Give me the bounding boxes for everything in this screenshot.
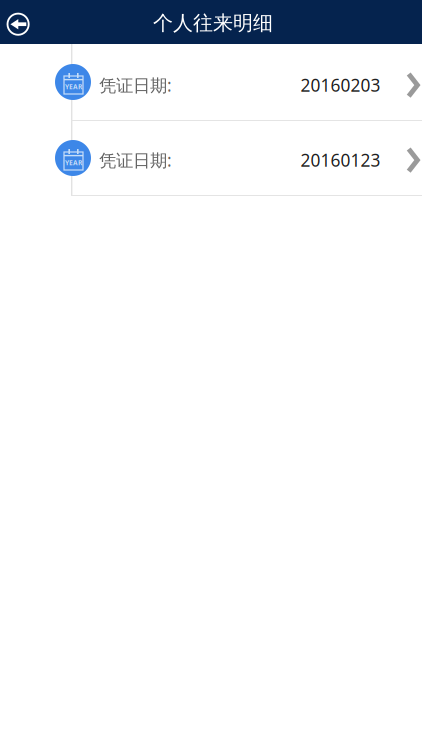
staticText: 20160203 (300, 73, 380, 96)
staticText: YEAR (65, 158, 82, 167)
button[interactable]: YEAR (0, 44, 422, 120)
button[interactable]: YEAR (0, 121, 422, 195)
staticText: YEAR (65, 82, 82, 91)
staticText: 凭证日期: (99, 73, 172, 96)
button[interactable]: Back (0, 0, 40, 44)
staticText: 凭证日期: (99, 148, 172, 171)
staticText: 20160123 (300, 148, 380, 171)
staticText: 个人往来明细 (153, 11, 273, 35)
